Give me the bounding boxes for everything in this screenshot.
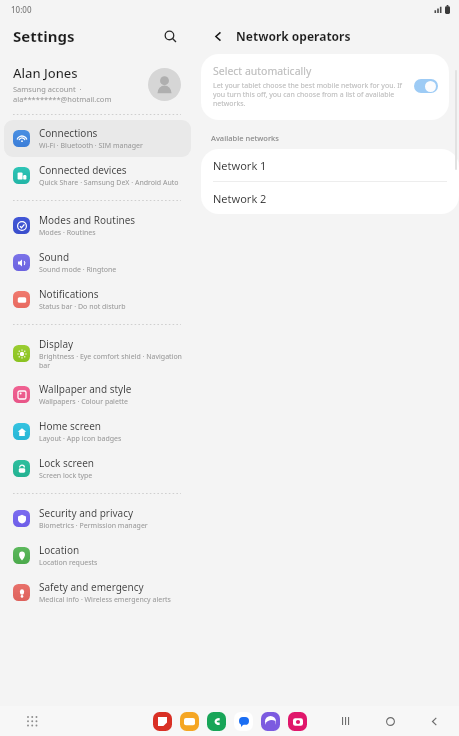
staticText: Modes · Routines xyxy=(39,228,96,238)
staticText: Wallpaper and style xyxy=(39,382,132,396)
button[interactable]: Back xyxy=(207,25,229,47)
staticText: Status bar · Do not disturb xyxy=(39,302,126,312)
button[interactable]: msg xyxy=(234,712,253,731)
staticText: ala*********@hotmail.com xyxy=(13,94,112,104)
button[interactable]: Back xyxy=(425,712,443,730)
staticText: Network 2 xyxy=(213,191,267,206)
button[interactable]: Location xyxy=(4,537,191,574)
button[interactable]: Home xyxy=(381,712,399,730)
staticText: Network operators xyxy=(236,28,351,44)
staticText: Connections xyxy=(39,126,98,140)
button[interactable]: internet xyxy=(261,712,280,731)
button[interactable]: Modes and Routines xyxy=(4,207,191,244)
button[interactable]: Connections xyxy=(4,120,191,157)
staticText: Wallpapers · Colour palette xyxy=(39,397,128,407)
staticText: Select automatically xyxy=(213,64,312,78)
button[interactable]: Connected devices xyxy=(4,157,191,194)
staticText: Network 1 xyxy=(213,158,267,173)
staticText: Settings xyxy=(13,26,75,46)
staticText: Connected devices xyxy=(39,163,127,177)
staticText: Samsung account · xyxy=(13,84,82,94)
staticText: Display xyxy=(39,337,74,351)
button[interactable]: Sound xyxy=(4,244,191,281)
button[interactable]: Safety and emergency xyxy=(4,574,191,611)
staticText: Alan Jones xyxy=(13,64,78,82)
staticText: Sound xyxy=(39,250,70,264)
staticText: Location xyxy=(39,543,80,557)
staticText: 10:00 xyxy=(11,4,32,15)
staticText: Notifications xyxy=(39,287,99,301)
staticText: Home screen xyxy=(39,419,102,433)
button[interactable]: Display xyxy=(4,331,191,376)
staticText: Let your tablet choose the best mobile n… xyxy=(213,81,404,108)
button[interactable]: Recents xyxy=(337,712,355,730)
staticText: Lock screen xyxy=(39,456,95,470)
staticText: Modes and Routines xyxy=(39,213,136,227)
button[interactable]: Network 1 xyxy=(201,149,459,181)
button[interactable]: Notifications xyxy=(4,281,191,318)
button[interactable]: Apps xyxy=(22,711,42,731)
staticText: Safety and emergency xyxy=(39,580,144,594)
button[interactable]: Lock screen xyxy=(4,450,191,487)
button[interactable]: phone xyxy=(207,712,226,731)
button[interactable]: files xyxy=(180,712,199,731)
staticText: Sound mode · Ringtone xyxy=(39,265,117,275)
staticText: Wi-Fi · Bluetooth · SIM manager xyxy=(39,141,143,151)
button[interactable]: Home screen xyxy=(4,413,191,450)
button[interactable]: Network 2 xyxy=(201,182,459,214)
button[interactable]: Select automatically toggle xyxy=(414,79,438,93)
staticText: Quick Share · Samsung DeX · Android Auto xyxy=(39,178,179,188)
staticText: Security and privacy xyxy=(39,506,134,520)
staticText: Biometrics · Permission manager xyxy=(39,521,148,531)
button[interactable]: camera xyxy=(288,712,307,731)
staticText: Medical info · Wireless emergency alerts xyxy=(39,595,171,605)
button[interactable]: Search xyxy=(157,23,183,49)
staticText: Available networks xyxy=(211,133,279,143)
staticText: Brightness · Eye comfort shield · Naviga… xyxy=(39,352,183,370)
staticText: Location requests xyxy=(39,558,98,568)
button[interactable]: Select automatically xyxy=(201,54,449,120)
button[interactable]: Security and privacy xyxy=(4,500,191,537)
button[interactable]: Alan Jones xyxy=(0,54,195,114)
staticText: Layout · App icon badges xyxy=(39,434,122,444)
button[interactable]: Wallpaper and style xyxy=(4,376,191,413)
staticText: Screen lock type xyxy=(39,471,93,481)
button[interactable]: keep xyxy=(153,712,172,731)
